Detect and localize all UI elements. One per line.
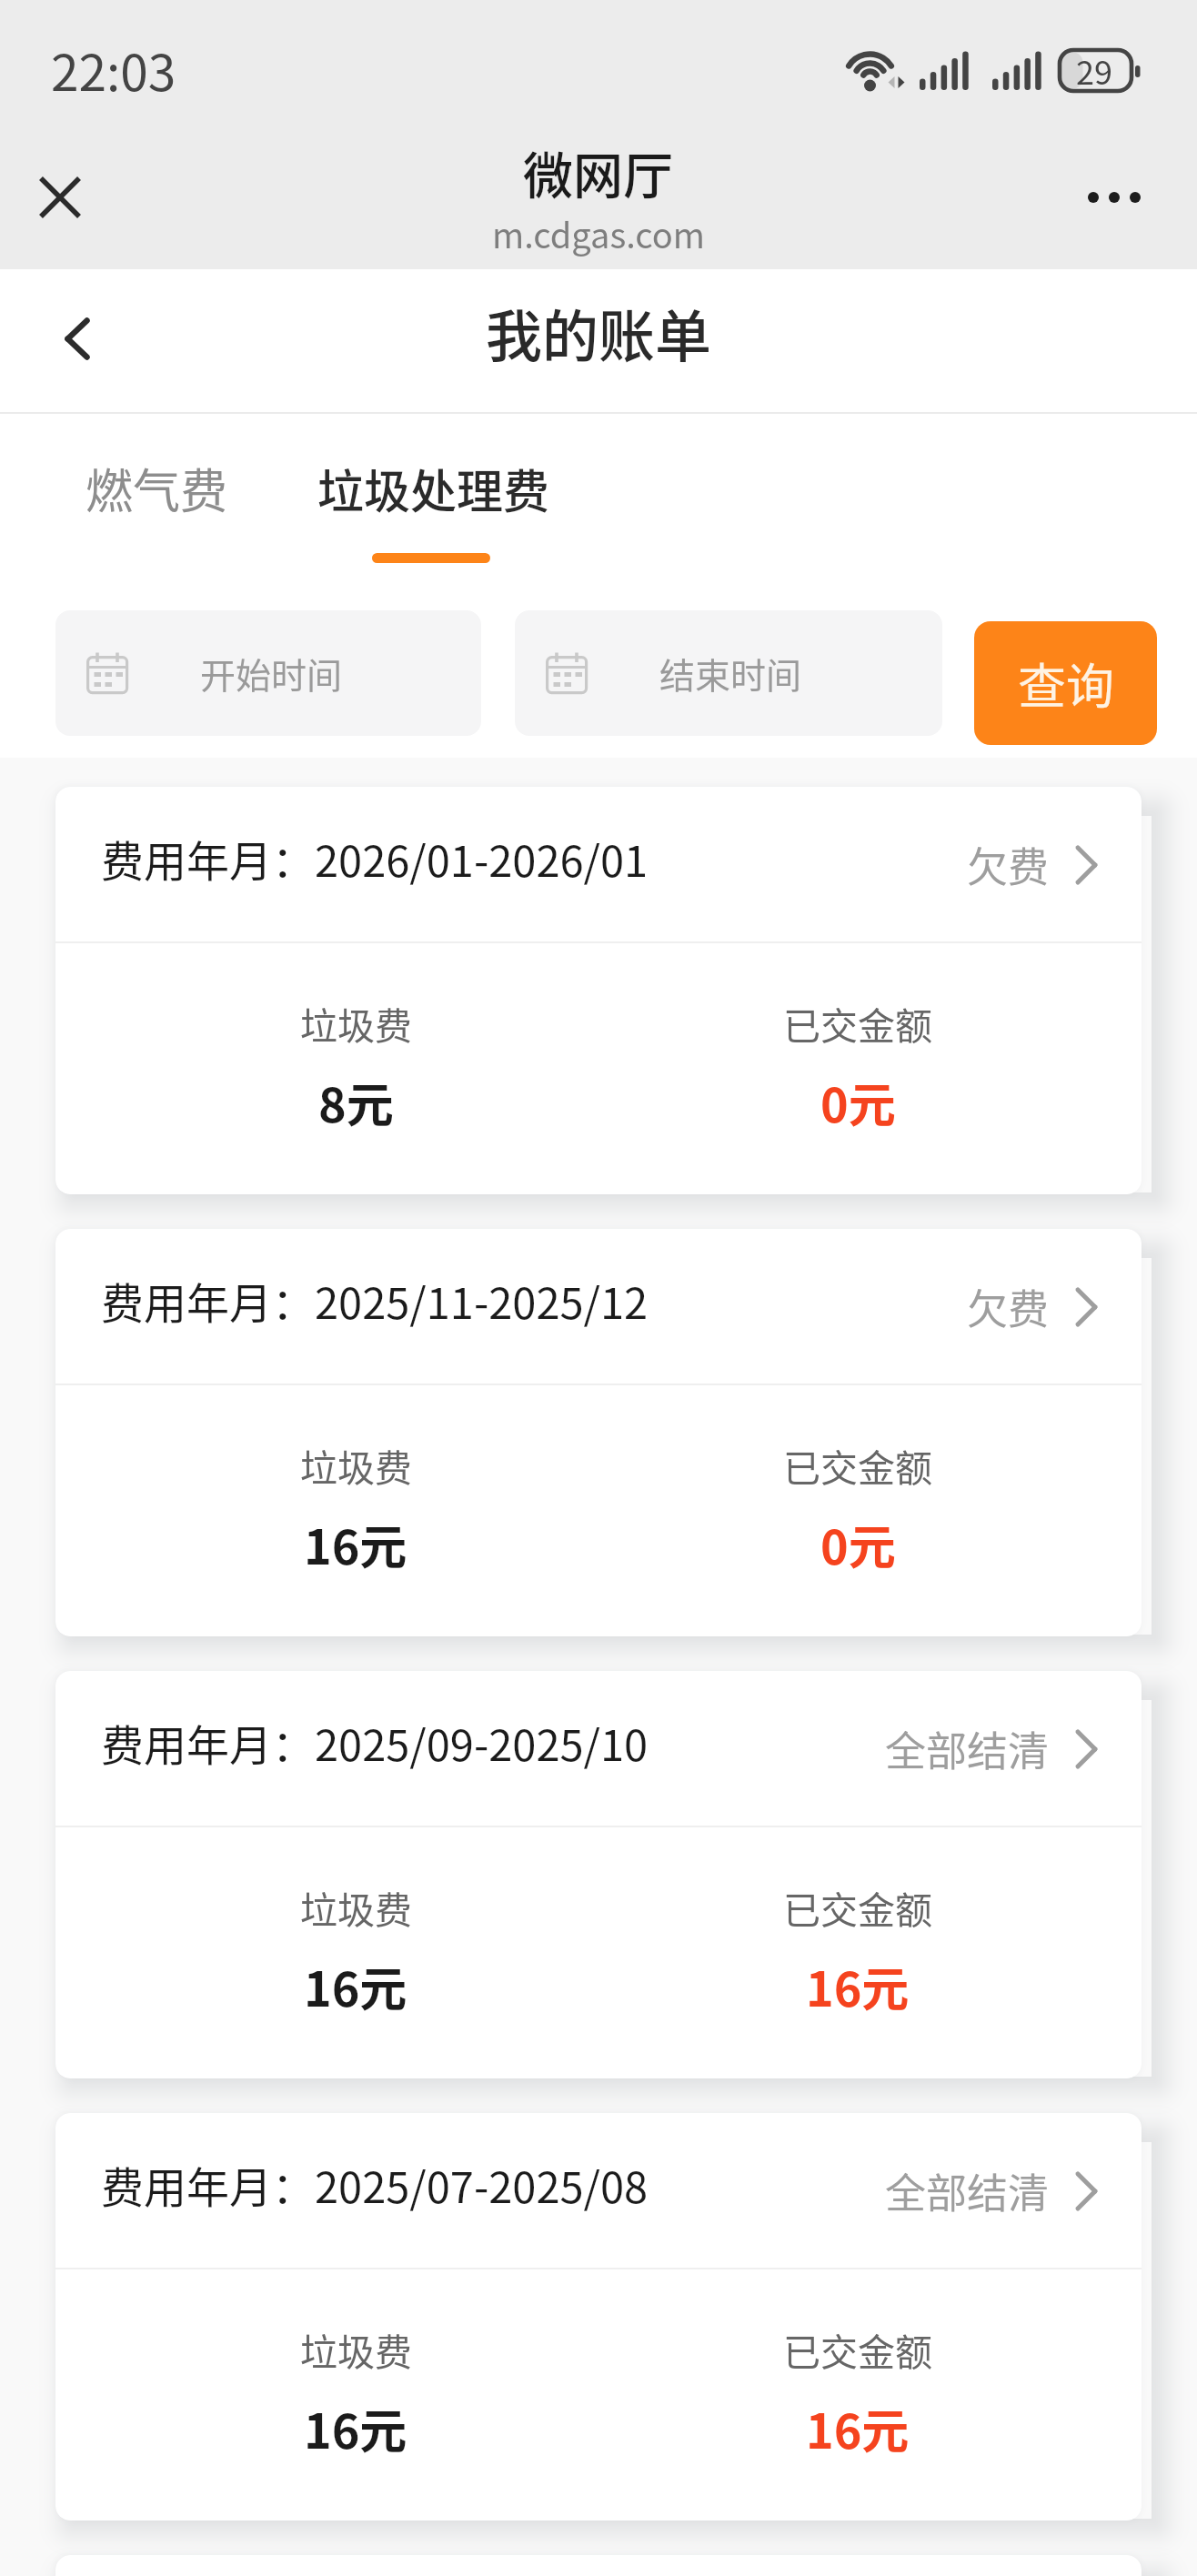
staticText: 已交金额 — [783, 1880, 932, 1934]
button[interactable]: 费用年月：2025/07-2025/08 — [55, 2113, 1142, 2521]
button[interactable]: 开始时间 — [55, 610, 481, 736]
button[interactable]: 查询 — [974, 621, 1157, 745]
staticText: 垃圾处理费 — [317, 455, 550, 522]
button[interactable]: 垃圾处理费 — [290, 414, 578, 587]
button[interactable]: 结束时间 — [515, 610, 942, 736]
staticText: 全部结清 — [885, 1719, 1050, 1778]
staticText: 0元 — [820, 1510, 896, 1578]
staticText: 欠费 — [967, 835, 1050, 894]
staticText: 29 — [1076, 46, 1112, 94]
staticText: 费用年月：2025/09-2025/10 — [101, 1711, 649, 1773]
button[interactable]: 燃气费 — [55, 414, 257, 559]
staticText: 22:03 — [51, 33, 176, 106]
staticText: 16元 — [304, 2394, 407, 2462]
staticText: 垃圾费 — [300, 996, 412, 1050]
staticText: 16元 — [806, 2394, 910, 2462]
staticText: 查询 — [1018, 649, 1114, 719]
staticText: 开始时间 — [200, 648, 343, 699]
staticText: 16元 — [304, 1510, 407, 1578]
staticText: 16元 — [806, 1952, 910, 2020]
staticText: 0元 — [820, 1068, 896, 1136]
staticText: 垃圾费 — [300, 1438, 412, 1492]
staticText: 已交金额 — [783, 2322, 932, 2376]
button[interactable]: 费用年月：2026/01-2026/01 — [55, 787, 1142, 1194]
staticText: m.cdgas.com — [492, 208, 705, 258]
staticText: 垃圾费 — [300, 1880, 412, 1934]
staticText: 垃圾费 — [300, 2322, 412, 2376]
staticText: 费用年月：2025/07-2025/08 — [101, 2153, 649, 2215]
button[interactable]: 费用年月：2025/11-2025/12 — [55, 1229, 1142, 1636]
staticText: 燃气费 — [85, 454, 228, 522]
staticText: 8元 — [318, 1068, 394, 1136]
staticText: 我的账单 — [486, 292, 712, 374]
button[interactable]: Close — [22, 159, 98, 236]
staticText: 已交金额 — [783, 996, 932, 1050]
staticText: 欠费 — [967, 1277, 1050, 1336]
staticText: 微网厅 — [523, 136, 674, 208]
button[interactable]: 费用年月：2025/09-2025/10 — [55, 1671, 1142, 2078]
staticText: 全部结清 — [885, 2161, 1050, 2220]
button[interactable]: Back — [36, 297, 118, 379]
staticText: 16元 — [304, 1952, 407, 2020]
staticText: 结束时间 — [659, 648, 802, 699]
staticText: 已交金额 — [783, 1438, 932, 1492]
staticText: 费用年月：2025/11-2025/12 — [101, 1269, 649, 1331]
button[interactable]: More options — [1075, 158, 1153, 236]
staticText: 费用年月：2026/01-2026/01 — [101, 827, 649, 889]
